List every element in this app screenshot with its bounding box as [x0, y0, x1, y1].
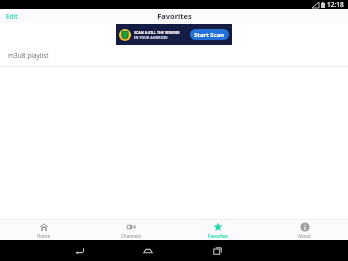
button[interactable]: Home	[0, 220, 87, 240]
staticText: m3u8 playlist	[8, 51, 49, 60]
button[interactable]: SCAN & KILL THE VIRUSES	[116, 24, 232, 45]
button[interactable]: Start Scan	[190, 29, 229, 40]
button[interactable]: Home	[137, 240, 159, 261]
staticText: Edit	[6, 12, 18, 21]
staticText: Channels	[121, 233, 141, 239]
staticText: 12:18	[327, 0, 344, 9]
button[interactable]: m3u8 playlist	[0, 45, 348, 67]
button[interactable]: Back	[68, 240, 90, 261]
staticText: IN YOUR ANDROID	[134, 35, 168, 40]
staticText: Home	[37, 233, 50, 239]
staticText: About	[298, 233, 312, 239]
button[interactable]: Recent apps	[206, 240, 228, 261]
button[interactable]: Favorites	[174, 220, 261, 240]
button[interactable]: About	[261, 220, 348, 240]
staticText: Favorites	[208, 233, 228, 239]
button[interactable]: Edit	[0, 10, 24, 23]
staticText: SCAN & KILL THE VIRUSES	[134, 30, 180, 35]
staticText: Favorites	[157, 11, 192, 21]
button[interactable]: Channels	[87, 220, 174, 240]
staticText: Start Scan	[194, 31, 225, 39]
